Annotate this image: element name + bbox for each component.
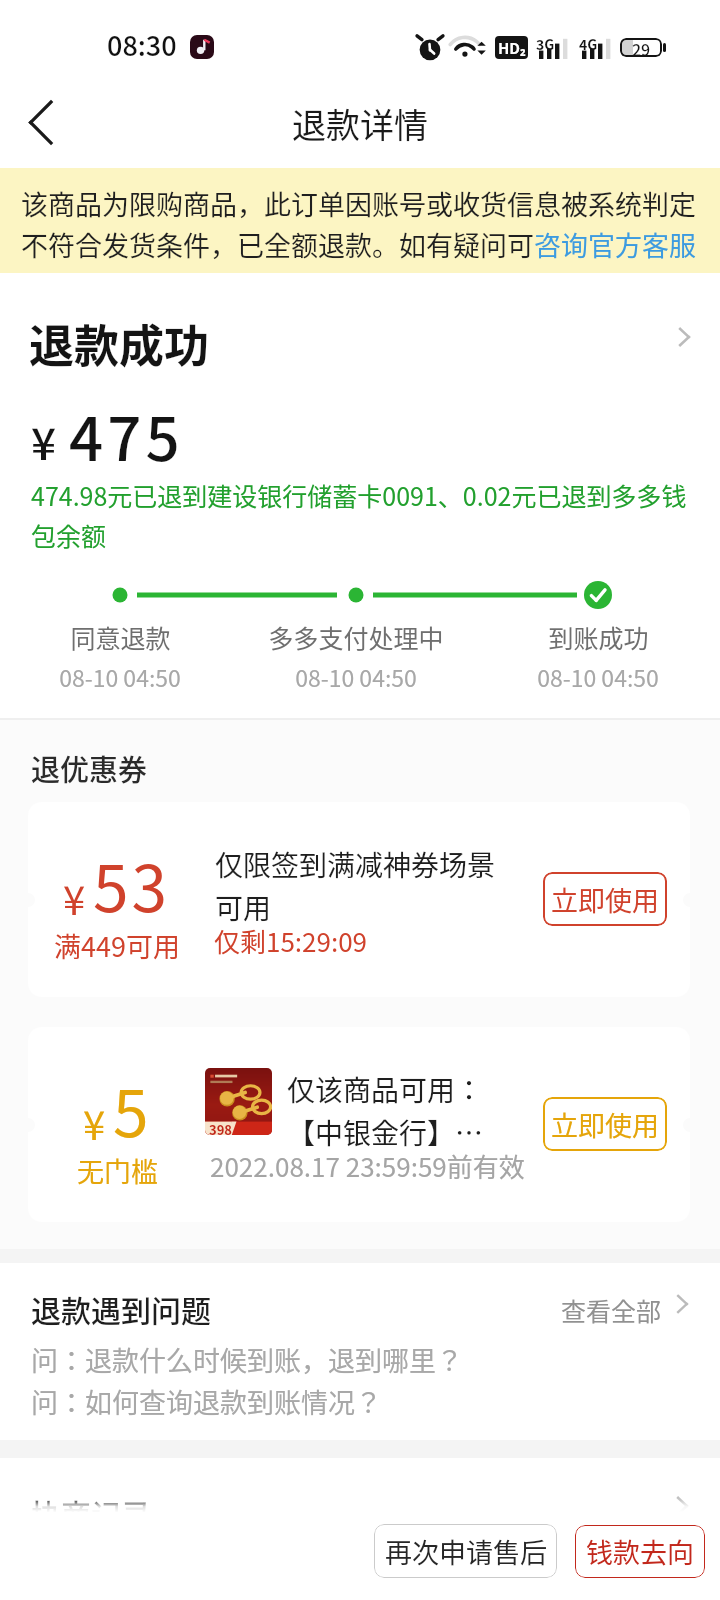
staticText: HD₂ <box>498 37 526 59</box>
staticText: 退款详情 <box>292 99 428 148</box>
staticText: 475 <box>69 391 184 478</box>
staticText: 仅剩15:29:09 <box>214 922 368 960</box>
staticText: 协商记录 <box>31 1491 151 1534</box>
staticText: 查看全部 <box>561 1292 662 1328</box>
staticText: 问：如何查询退款到账情况？ <box>31 1382 382 1421</box>
staticText: 仅该商品可用： 【中银金行】… <box>287 1069 484 1153</box>
staticText: 29 <box>632 38 651 56</box>
staticText: 满449可用 <box>54 926 180 965</box>
staticText: 5 <box>113 1063 152 1156</box>
staticText: ¥ <box>83 1094 106 1152</box>
staticText: 08-10 04:50 <box>537 660 659 693</box>
staticText: 退优惠券 <box>31 747 148 789</box>
staticText: 无门槛 <box>77 1151 158 1190</box>
button[interactable]: 再次申请售后 <box>374 1524 557 1578</box>
staticText: 4G <box>579 34 598 54</box>
staticText: 398 <box>209 1120 233 1135</box>
staticText: 再次申请售后 <box>385 1532 547 1571</box>
staticText: 多多支付处理中 <box>268 619 444 655</box>
button[interactable]: ¥ <box>28 802 690 997</box>
staticText: ¥ <box>63 869 86 927</box>
staticText: 钱款去向 <box>586 1532 694 1571</box>
staticText: 08-10 04:50 <box>59 660 181 693</box>
staticText: 08:30 <box>107 25 177 64</box>
staticText: 退款成功 <box>29 311 210 375</box>
button[interactable]: 该商品为限购商品，此订单因账号或收货信息被系统判定不符合发货条件，已全额退款。如… <box>0 168 720 273</box>
button[interactable]: ¥ <box>28 1027 690 1222</box>
staticText: 问：退款什么时候到账，退到哪里？ <box>31 1340 463 1379</box>
button[interactable]: 立即使用 <box>543 1097 667 1151</box>
staticText: 08-10 04:50 <box>295 660 417 693</box>
staticText: 3G <box>536 34 555 54</box>
button[interactable]: 立即使用 <box>543 872 667 926</box>
button[interactable]: 协商记录 <box>0 1458 720 1600</box>
staticText: 到账成功 <box>548 619 649 655</box>
staticText: ¥ <box>31 409 57 473</box>
staticText: 立即使用 <box>551 1105 659 1144</box>
staticText: 474.98元已退到建设银行储蓄卡0091、0.02元已退到多多钱包余额 <box>31 477 697 553</box>
button[interactable]: Back <box>0 81 80 161</box>
staticText: 2022.08.17 23:59:59前有效 <box>210 1147 525 1185</box>
staticText: 同意退款 <box>70 619 171 655</box>
staticText: 退款遇到问题 <box>31 1287 211 1330</box>
staticText: 立即使用 <box>551 880 659 919</box>
staticText: 该商品为限购商品，此订单因账号或收货信息被系统判定不符合发货条件，已全额退款。如… <box>21 184 703 264</box>
staticText: 仅限签到满减神券场景 可用 <box>215 844 496 928</box>
button[interactable]: 钱款去向 <box>575 1525 705 1578</box>
button[interactable]: 退款遇到问题 <box>0 1283 720 1339</box>
staticText: 53 <box>93 838 171 931</box>
button[interactable]: 退款成功 <box>0 305 720 369</box>
